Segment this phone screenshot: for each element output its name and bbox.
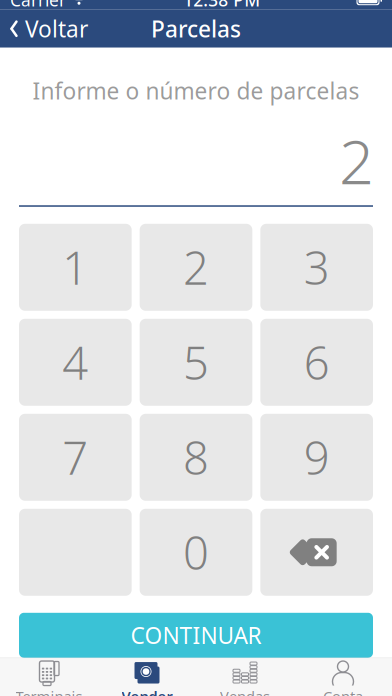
button[interactable]: 8 <box>140 414 252 501</box>
staticText: 1 <box>62 237 88 297</box>
staticText: 9 <box>304 427 330 487</box>
staticText: 12:38 PM <box>183 0 260 11</box>
staticText: 2 <box>339 120 374 201</box>
button[interactable]: Voltar <box>0 8 96 50</box>
staticText: 6 <box>304 332 330 392</box>
button[interactable]: 2 <box>140 224 252 311</box>
staticText: Carrier <box>10 0 66 11</box>
staticText: 3 <box>304 237 330 297</box>
staticText: 7 <box>62 427 88 487</box>
button[interactable]: Delete <box>260 509 373 596</box>
staticText: Terminais <box>15 686 82 696</box>
staticText: 5 <box>183 332 209 392</box>
staticText: CONTINUAR <box>130 620 261 650</box>
button[interactable]: 6 <box>260 319 373 406</box>
staticText: Vendas <box>220 686 270 696</box>
staticText: Conta <box>323 686 363 696</box>
staticText: 4 <box>62 332 88 392</box>
button[interactable]: 5 <box>140 319 252 406</box>
button[interactable]: Conta <box>294 655 392 696</box>
button[interactable]: 9 <box>260 414 373 501</box>
staticText: Vender <box>121 686 172 696</box>
staticText: Voltar <box>25 14 88 44</box>
staticText: Parcelas <box>151 14 241 44</box>
button[interactable]: 4 <box>19 319 132 406</box>
staticText: 8 <box>183 427 209 487</box>
button[interactable]: Vendas <box>196 655 294 696</box>
button[interactable]: 0 <box>140 509 252 596</box>
staticText: 0 <box>183 522 209 582</box>
staticText: 2 <box>183 237 209 297</box>
button[interactable]: 3 <box>260 224 373 311</box>
button[interactable]: Vender <box>98 655 196 696</box>
button[interactable]: Terminais <box>0 655 98 696</box>
button[interactable]: CONTINUAR <box>19 613 373 658</box>
button[interactable]: 1 <box>19 224 132 311</box>
button[interactable]: 7 <box>19 414 132 501</box>
staticText: Informe o número de parcelas <box>32 76 359 106</box>
